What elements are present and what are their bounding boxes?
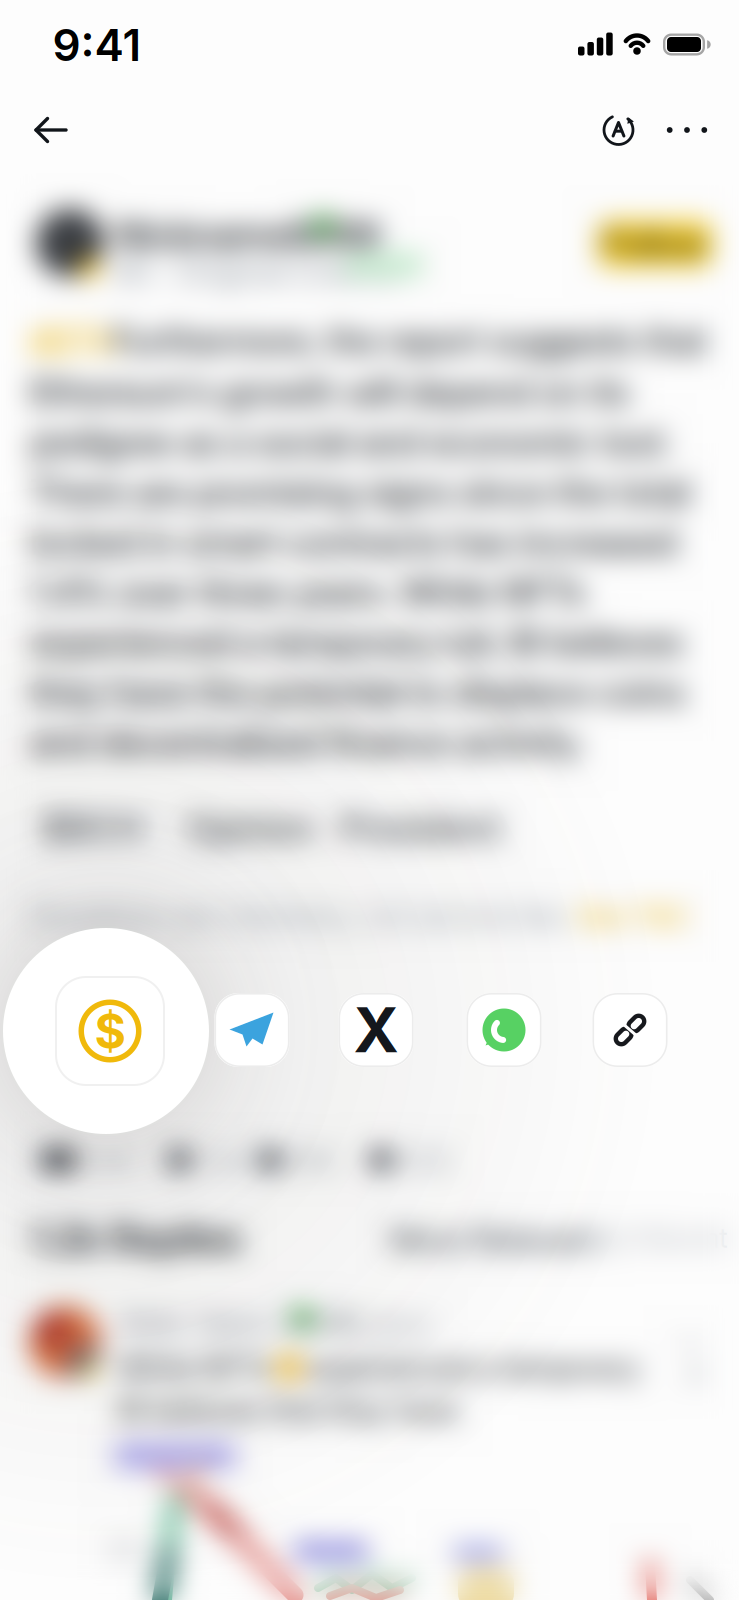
- staticText: Ethereum's growth will depend on its: [30, 370, 629, 414]
- button[interactable]: Share to X: [338, 993, 413, 1067]
- staticText: pedigree as a social and economic tool.: [30, 420, 671, 464]
- staticText: Most Recent: [572, 1222, 728, 1254]
- staticText: locked in smart contracts has increased: [30, 520, 677, 564]
- staticText: Opinion: [186, 805, 315, 850]
- staticText: X: [353, 993, 398, 1067]
- staticText: #ETH: [30, 320, 122, 364]
- staticText: BI believes that they have: [118, 1392, 457, 1427]
- staticText: 2.4k: [75, 1143, 132, 1177]
- staticText: 856: [286, 1143, 336, 1177]
- staticText: $: [94, 1002, 125, 1060]
- button[interactable]: Share to WhatsApp: [466, 993, 541, 1067]
- staticText: 1.4% over three years. While NFTs: [30, 570, 585, 614]
- staticText: Furthermore, the report suggests that: [112, 320, 707, 362]
- button[interactable]: Translate: [602, 113, 635, 147]
- staticText: 9:41: [52, 18, 141, 72]
- staticText: Nickname8899: [115, 212, 380, 257]
- staticText: 1.2k: [196, 1143, 246, 1177]
- staticText: experienced a temporary lull, BI believe…: [30, 620, 683, 664]
- staticText: Donations are voluntary, not service fee…: [30, 898, 577, 933]
- button[interactable]: More: [665, 115, 709, 145]
- staticText: and decentralized finance activity.: [30, 720, 584, 764]
- staticText: Follow: [603, 223, 706, 265]
- button[interactable]: Share to Telegram: [214, 993, 289, 1067]
- staticText: experienced a temporary: [307, 1350, 640, 1385]
- staticText: President: [340, 805, 500, 850]
- staticText: they have the potential to displace coin…: [30, 670, 685, 714]
- staticText: See T&C: [577, 899, 690, 933]
- staticText: Author: [336, 1305, 432, 1344]
- staticText: 1.2k Replies: [30, 1214, 241, 1262]
- staticText: $BCH: [42, 805, 144, 850]
- button[interactable]: Back: [34, 115, 68, 145]
- staticText: 432: [398, 1143, 450, 1177]
- staticText: There are promising signs since the tota…: [30, 470, 690, 514]
- button[interactable]: Tip: [55, 976, 165, 1086]
- staticText: 6h · Original Creator: [115, 252, 402, 291]
- staticText: While NFTs: [118, 1350, 271, 1385]
- button[interactable]: Copy link: [592, 993, 667, 1067]
- staticText: Aldo Vans 2968: [118, 1302, 356, 1342]
- staticText: Most Relevant: [390, 1220, 599, 1259]
